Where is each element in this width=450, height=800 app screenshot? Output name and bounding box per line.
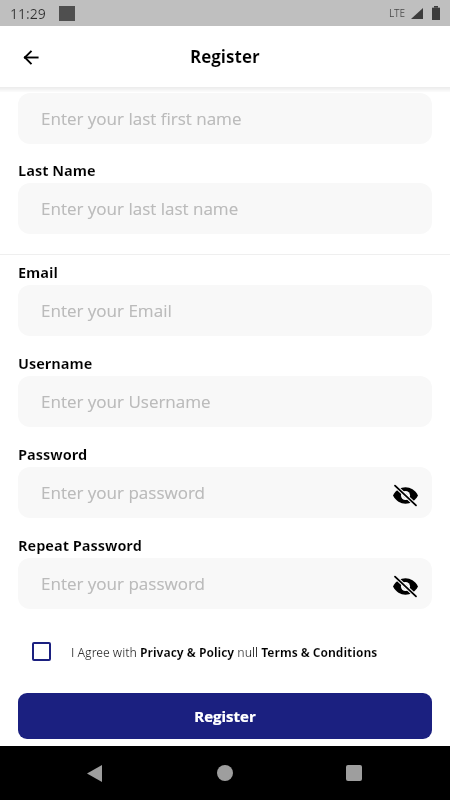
button[interactable]: Enter your Email [18,285,432,336]
button[interactable]: Enter your password [18,467,432,518]
staticText: Enter your last last name [41,197,239,220]
staticText: Enter your last first name [41,107,242,130]
staticText: Enter your Email [41,299,172,322]
button[interactable]: Register [18,693,432,739]
staticText: I Agree with Privacy & Policy null Terms… [71,644,378,660]
staticText: Password [18,445,88,465]
staticText: Username [18,354,93,374]
staticText: 11:29 [10,4,46,23]
staticText: Email [18,263,58,283]
button[interactable]: Toggle password visibility [388,569,422,603]
button[interactable]: Enter your Username [18,376,432,427]
staticText: Enter your password [41,481,206,504]
button[interactable]: Enter your last first name [18,93,432,144]
staticText: Register [194,706,256,726]
staticText: Enter your Username [41,390,211,413]
staticText: Register [190,45,260,68]
button[interactable]: Recent apps [330,749,378,797]
button[interactable]: Enter your password [18,558,432,609]
button[interactable]: Back [70,749,118,797]
button[interactable]: Home [201,749,249,797]
button[interactable]: Toggle password visibility [388,478,422,512]
button[interactable]: Back [9,35,53,79]
staticText: Enter your password [41,572,206,595]
staticText: Last Name [18,161,96,181]
staticText: Repeat Password [18,536,142,556]
staticText: LTE [389,6,406,20]
button[interactable]: Enter your last last name [18,183,432,234]
button[interactable]: I agree to the terms [32,642,51,661]
